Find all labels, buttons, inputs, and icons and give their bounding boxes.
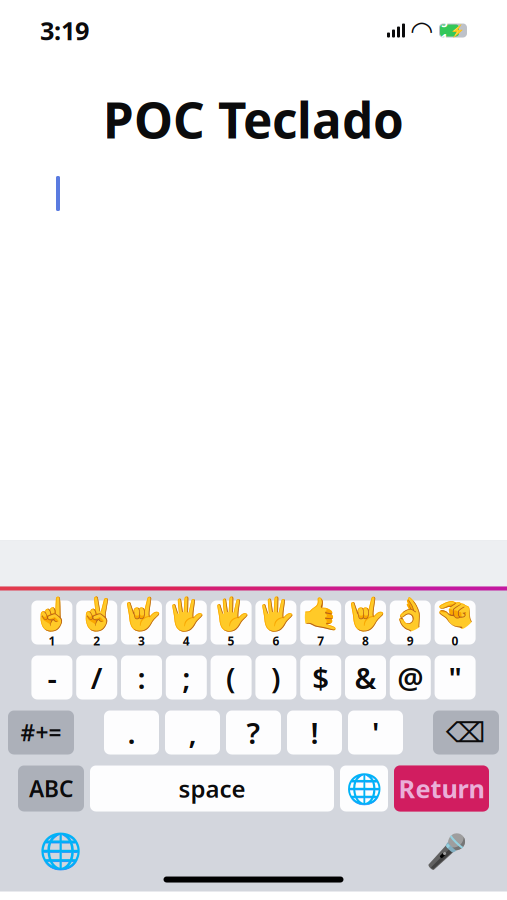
button[interactable]: - [31,655,72,699]
button[interactable]: . [104,710,159,754]
button[interactable]: ( [211,655,252,699]
staticText: ! [310,713,318,752]
button[interactable]: Number 4 [166,600,207,644]
staticText: ) [271,658,281,697]
button[interactable]: Next keyboard [36,829,84,873]
button[interactable]: space [90,765,334,811]
staticText: " [449,658,462,697]
staticText: ABC [29,773,73,803]
staticText: 3 [138,633,145,649]
staticText: space [178,773,245,804]
staticText: - [47,658,56,697]
staticText: ⚡ [450,24,465,37]
staticText: 0 [452,633,459,649]
button[interactable]: Number 8 [345,600,386,644]
button[interactable]: ? [226,710,281,754]
button[interactable]: Number 1 [31,600,72,644]
staticText: 5 [228,633,235,649]
button[interactable]: & [345,655,386,699]
staticText: ? [246,713,260,752]
staticText: . [127,713,135,752]
staticText: ◠ [411,15,432,46]
staticText: 4 [183,633,190,649]
button[interactable]: Number 6 [255,600,296,644]
staticText: $ [312,658,329,697]
staticText: 2 [93,633,100,649]
button[interactable]: #+= [8,710,74,754]
staticText: 🤙 [301,596,341,633]
staticText: ⌫ [446,717,486,748]
staticText: @ [397,658,423,697]
staticText: 🖐 [256,596,296,633]
staticText: 👌 [390,596,430,633]
button[interactable]: Number 7 [300,600,341,644]
button[interactable]: Delete [433,710,499,754]
button[interactable]: Number 2 [76,600,117,644]
staticText: 6 [272,633,279,649]
staticText: Return [398,772,484,805]
button[interactable]: $ [300,655,341,699]
staticText: 9 [407,633,414,649]
staticText: ✌ [77,596,117,633]
button[interactable]: Number 9 [390,600,431,644]
staticText: 🤟 [345,596,385,633]
staticText: ' [372,713,379,752]
button[interactable]: Number 0 [435,600,476,644]
staticText: 🌐 [38,832,81,871]
button[interactable]: / [76,655,117,699]
staticText: POC Teclado [103,86,404,152]
staticText: 1 [48,633,55,649]
staticText: , [188,713,196,752]
button[interactable]: @ [390,655,431,699]
staticText: 🌐 [345,772,382,805]
button[interactable]: Return [394,765,489,811]
staticText: 🖐 [211,596,251,633]
staticText: ☝ [32,596,72,633]
button[interactable]: : [121,655,162,699]
button[interactable]: ' [348,710,403,754]
button[interactable]: ABC [18,765,84,811]
staticText: ( [226,658,236,697]
staticText: & [354,658,376,697]
staticText: 3:19 [40,14,89,47]
staticText: 7 [317,633,324,649]
staticText: 51 [441,15,448,46]
staticText: : [137,658,145,697]
staticText: / [91,658,103,697]
button[interactable]: Next keyboard [340,765,388,811]
staticText: 🤏 [435,596,475,633]
button[interactable]: ) [255,655,296,699]
button[interactable]: " [435,655,476,699]
staticText: 🤟 [121,596,161,633]
staticText: ; [182,658,190,697]
button[interactable]: , [165,710,220,754]
staticText: 8 [362,633,369,649]
button[interactable]: Dictation [423,829,471,873]
button[interactable]: Number 5 [211,600,252,644]
staticText: 🖐 [166,596,206,633]
staticText: #+= [20,717,61,747]
button[interactable]: Number 3 [121,600,162,644]
staticText: 🎤 [426,832,468,871]
button[interactable]: ! [287,710,342,754]
button[interactable]: ; [166,655,207,699]
